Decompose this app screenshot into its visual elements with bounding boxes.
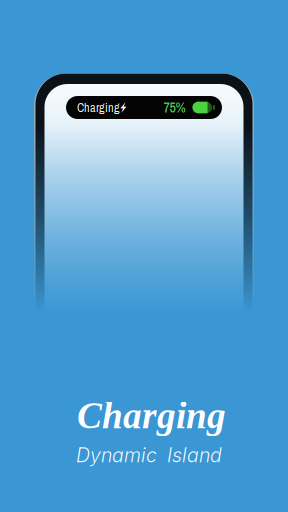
staticText: Charging xyxy=(77,395,226,436)
staticText: Dynamic Island xyxy=(76,443,222,467)
button[interactable]: Charging 75 percent xyxy=(66,96,222,119)
staticText: 75% xyxy=(163,98,185,117)
staticText: Charging xyxy=(77,99,120,116)
